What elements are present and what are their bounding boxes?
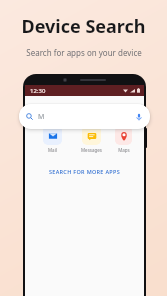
button[interactable]: Voice search [134,112,143,121]
staticText: Messages [81,147,102,153]
button[interactable]: Messages [76,126,107,153]
staticText: Device Search [21,14,146,39]
staticText: Maps [118,147,130,153]
staticText: M [38,112,45,122]
button[interactable]: SEARCH FOR MORE APPS [43,165,126,178]
staticText: SEARCH FOR MORE APPS [49,168,120,175]
button[interactable]: Maps [115,126,132,153]
button[interactable]: Mail [37,126,68,153]
staticText: Search for apps on your device [26,47,142,58]
staticText: 12:30 [30,87,46,95]
button[interactable]: Search apps [19,104,150,129]
staticText: Mail [48,147,57,153]
